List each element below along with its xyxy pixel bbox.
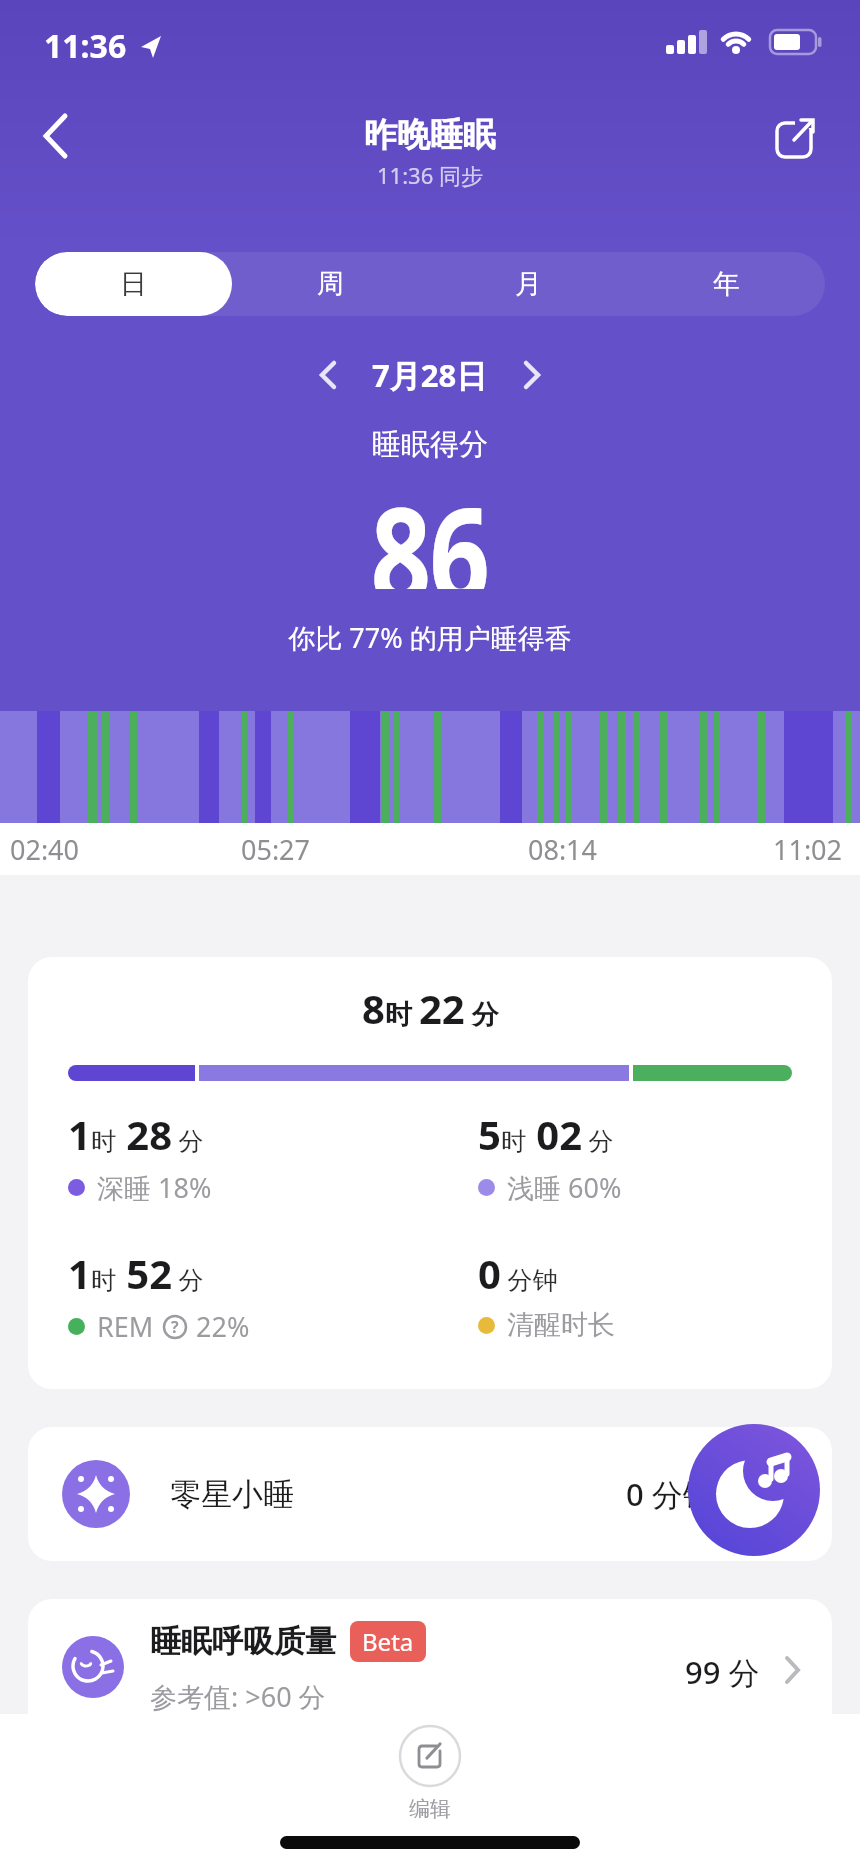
staticText: 1时 52 分 <box>68 1246 204 1300</box>
staticText: 睡眠得分 <box>0 426 860 463</box>
staticText: 99 分 <box>685 1651 760 1693</box>
staticText: 5时 02 分 <box>478 1107 614 1161</box>
staticText: 日 <box>120 267 147 301</box>
button[interactable]: 8时 22 分 <box>28 957 832 1389</box>
staticText: 8时 22 分 <box>362 981 499 1035</box>
button[interactable] <box>510 353 554 397</box>
staticText: 22% <box>196 1308 250 1345</box>
button[interactable] <box>688 1424 820 1556</box>
button[interactable]: 年 <box>627 252 825 316</box>
staticText: 11:02 <box>773 831 843 868</box>
staticText: 0 分钟 <box>626 1473 714 1515</box>
button[interactable]: 零星小睡 <box>28 1427 832 1561</box>
staticText: 深睡 18% <box>97 1169 212 1206</box>
staticText: 05:27 <box>241 831 311 868</box>
staticText: 你比 77% 的用户睡得香 <box>0 619 860 656</box>
button[interactable] <box>30 110 82 162</box>
staticText: 11:36 同步 <box>377 160 483 190</box>
staticText: 86 <box>371 463 489 589</box>
staticText: 0 分钟 <box>478 1246 558 1300</box>
staticText: ? <box>171 1316 179 1338</box>
staticText: 08:14 <box>528 831 598 868</box>
button[interactable]: 睡眠呼吸质量 <box>28 1599 832 1779</box>
staticText: 编辑 <box>409 1796 451 1822</box>
button[interactable] <box>772 114 820 162</box>
staticText: REM <box>97 1308 154 1345</box>
staticText: 零星小睡 <box>170 1475 294 1514</box>
staticText: 11:36 <box>44 24 127 68</box>
staticText: 年 <box>713 267 740 301</box>
staticText: 浅睡 60% <box>507 1169 622 1206</box>
staticText: 参考值: >60 分 <box>150 1678 326 1715</box>
staticText: 昨晚睡眠 <box>364 114 496 156</box>
button[interactable]: 月 <box>429 252 627 316</box>
staticText: 月 <box>515 267 542 301</box>
button[interactable]: 周 <box>232 252 429 316</box>
staticText: 1时 28 分 <box>68 1107 204 1161</box>
staticText: 周 <box>317 267 344 301</box>
staticText: 睡眠呼吸质量 <box>150 1622 336 1661</box>
staticText: 7月28日 <box>372 354 488 396</box>
button[interactable]: 日 <box>35 252 232 316</box>
button[interactable] <box>306 353 350 397</box>
button[interactable]: 编辑 <box>398 1724 462 1822</box>
staticText: 02:40 <box>10 831 80 868</box>
staticText: 清醒时长 <box>507 1308 615 1342</box>
staticText: Beta <box>362 1625 414 1658</box>
